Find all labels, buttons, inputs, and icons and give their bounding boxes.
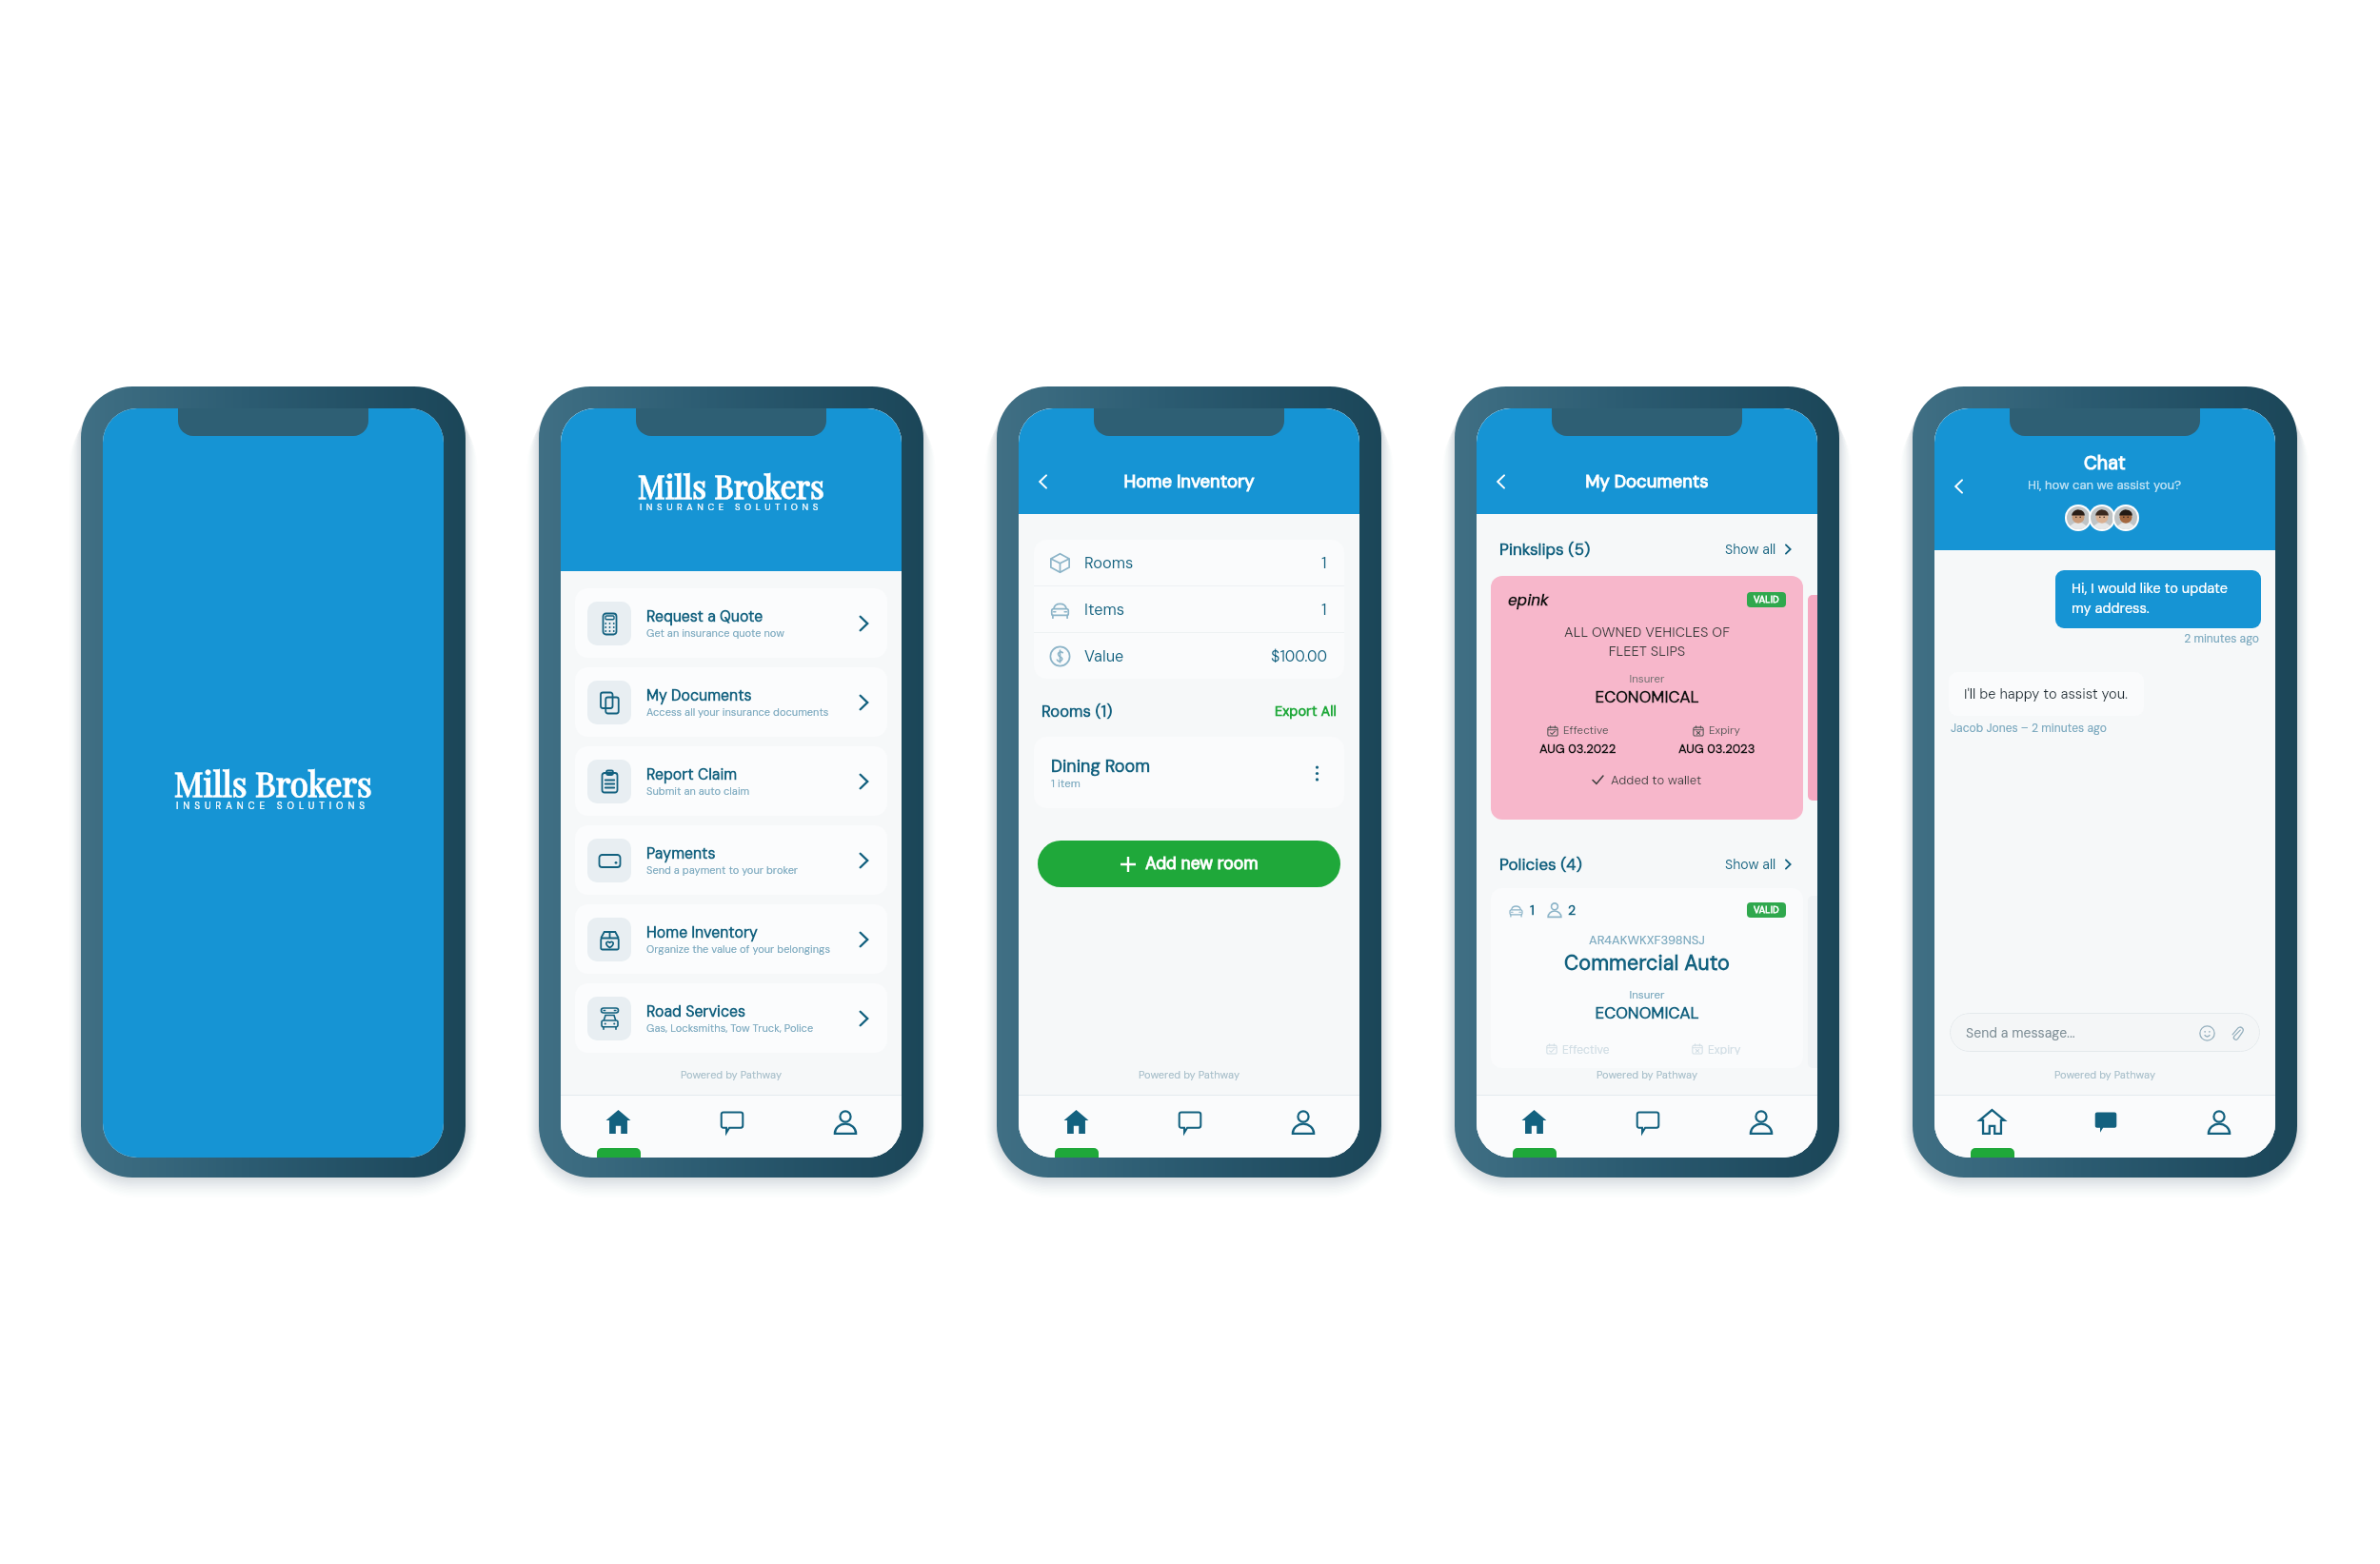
staticText: Insurer: [1508, 672, 1786, 686]
staticText: ALL OWNED VEHICLES OF FLEET SLIPS: [1508, 624, 1786, 661]
staticText: Expiry: [1708, 1042, 1741, 1055]
button[interactable]: Export All: [1275, 703, 1337, 721]
staticText: Expiry: [1709, 723, 1741, 738]
staticText: Mills Brokers: [638, 465, 824, 506]
staticText: AUG 03.2023: [1678, 741, 1755, 757]
staticText: Hi, how can we assist you?: [2028, 477, 2182, 493]
staticText: Rooms (1): [1041, 702, 1113, 722]
staticText: Value: [1084, 646, 1124, 666]
button[interactable]: Payments: [575, 825, 887, 895]
button[interactable]: Request a Quote: [575, 588, 887, 658]
staticText: Export All: [1275, 703, 1337, 721]
staticText: 1 item: [1051, 777, 1081, 791]
staticText: Policies (4): [1499, 854, 1582, 875]
button[interactable]: Home: [1477, 1096, 1591, 1158]
staticText: 1: [1321, 600, 1327, 620]
staticText: Dining Room: [1051, 755, 1151, 777]
staticText: Organize the value of your belongings: [646, 942, 831, 956]
button[interactable]: Send a message...: [1950, 1013, 2260, 1052]
button[interactable]: My Documents: [575, 667, 887, 737]
button[interactable]: Chat: [1133, 1096, 1246, 1158]
staticText: Added to wallet: [1611, 772, 1702, 788]
staticText: I'll be happy to assist you.: [1964, 685, 2129, 703]
staticText: Mills Brokers: [174, 761, 372, 805]
staticText: Access all your insurance documents: [646, 705, 829, 719]
staticText: 2 minutes ago: [1934, 631, 2259, 646]
staticText: Effective: [1562, 1042, 1610, 1055]
staticText: VALID: [1754, 904, 1779, 916]
staticText: Items: [1084, 600, 1125, 620]
button[interactable]: Back: [1945, 472, 1973, 501]
staticText: Powered by Pathway: [1019, 1068, 1359, 1081]
staticText: Add new room: [1145, 853, 1259, 875]
button[interactable]: epink: [1491, 576, 1803, 820]
button[interactable]: 1: [1491, 888, 1803, 1068]
button[interactable]: Show all: [1725, 541, 1795, 558]
staticText: Jacob Jones – 2 minutes ago: [1951, 721, 2107, 736]
staticText: Send a message...: [1966, 1024, 2075, 1041]
staticText: epink: [1508, 589, 1549, 610]
staticText: Show all: [1725, 541, 1776, 558]
button[interactable]: Chat: [1591, 1096, 1704, 1158]
staticText: Powered by Pathway: [1934, 1068, 2275, 1081]
button[interactable]: Home Inventory: [575, 904, 887, 974]
staticText: 1: [1321, 553, 1327, 573]
button[interactable]: Profile: [1246, 1096, 1359, 1158]
staticText: My Documents: [1477, 470, 1817, 493]
staticText: Send a payment to your broker: [646, 863, 799, 877]
staticText: ECONOMICAL: [1508, 686, 1786, 707]
staticText: Chat: [2084, 451, 2126, 475]
button[interactable]: Back: [1029, 467, 1058, 496]
button[interactable]: Home: [1019, 1096, 1133, 1158]
staticText: ECONOMICAL: [1508, 1002, 1786, 1023]
staticText: Get an insurance quote now: [646, 626, 784, 640]
button[interactable]: Add new room: [1038, 841, 1340, 887]
button[interactable]: Profile: [1704, 1096, 1817, 1158]
staticText: Powered by Pathway: [1477, 1068, 1817, 1081]
button[interactable]: Attach file: [2226, 1022, 2247, 1043]
button[interactable]: Profile: [788, 1096, 902, 1158]
staticText: INSURANCE SOLUTIONS: [176, 800, 370, 812]
button[interactable]: Value: [1049, 633, 1327, 679]
staticText: Submit an auto claim: [646, 784, 750, 798]
staticText: Hi, I would like to update my address.: [2072, 580, 2245, 617]
staticText: Effective: [1563, 723, 1609, 738]
staticText: Payments: [646, 843, 716, 863]
staticText: Road Services: [646, 1001, 746, 1021]
button[interactable]: Home: [1934, 1096, 2049, 1158]
staticText: 2: [1568, 901, 1577, 919]
button[interactable]: Chat: [675, 1096, 788, 1158]
staticText: My Documents: [646, 685, 752, 705]
staticText: INSURANCE SOLUTIONS: [640, 502, 823, 513]
staticText: Pinkslips (5): [1499, 539, 1591, 560]
staticText: Powered by Pathway: [561, 1068, 902, 1081]
button[interactable]: Dining Room: [1034, 737, 1344, 808]
staticText: AUG 03.2022: [1539, 741, 1616, 757]
button[interactable]: Road Services: [575, 983, 887, 1053]
button[interactable]: Rooms: [1049, 540, 1327, 585]
button[interactable]: Items: [1049, 586, 1327, 632]
staticText: Insurer: [1508, 988, 1786, 1002]
staticText: 1: [1530, 901, 1535, 919]
staticText: Show all: [1725, 856, 1776, 873]
staticText: Commercial Auto: [1508, 950, 1786, 977]
button[interactable]: Emoji: [2196, 1022, 2217, 1043]
staticText: $100.00: [1271, 646, 1327, 666]
button[interactable]: Home: [561, 1096, 675, 1158]
staticText: Rooms: [1084, 553, 1134, 573]
button[interactable]: Profile: [2162, 1096, 2275, 1158]
button[interactable]: Report Claim: [575, 746, 887, 816]
staticText: Home Inventory: [646, 922, 758, 942]
staticText: VALID: [1754, 594, 1779, 605]
button[interactable]: Chat: [2049, 1096, 2162, 1158]
button[interactable]: Show all: [1725, 856, 1795, 873]
staticText: AR4AKWKXF398NSJ: [1508, 932, 1786, 948]
button[interactable]: Back: [1487, 467, 1516, 496]
button[interactable]: More options: [1304, 761, 1329, 785]
staticText: Report Claim: [646, 764, 738, 784]
staticText: Home Inventory: [1019, 470, 1359, 493]
staticText: Gas, Locksmiths, Tow Truck, Police: [646, 1021, 814, 1035]
staticText: Request a Quote: [646, 606, 764, 626]
